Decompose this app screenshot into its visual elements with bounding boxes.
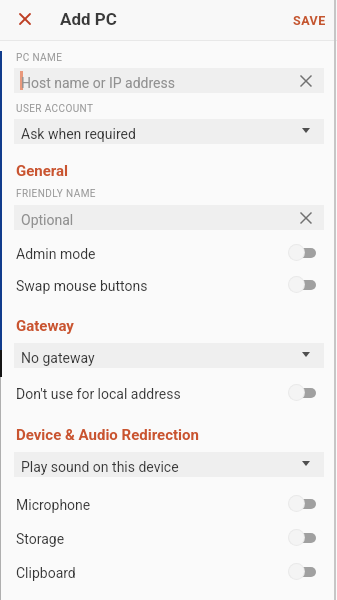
staticText: FRIENDLY NAME bbox=[16, 188, 96, 200]
staticText: Host name or IP address bbox=[21, 75, 175, 91]
button[interactable]: Swap mouse buttons bbox=[0, 269, 337, 301]
staticText: Clipboard bbox=[16, 565, 76, 581]
staticText: Microphone bbox=[16, 497, 91, 513]
button[interactable]: Clear bbox=[294, 69, 318, 93]
staticText: PC NAME bbox=[16, 52, 63, 64]
staticText: Gateway bbox=[16, 317, 74, 335]
staticText: Ask when required bbox=[21, 126, 136, 142]
button[interactable]: No gateway bbox=[14, 343, 324, 368]
button[interactable]: SAVE bbox=[284, 4, 335, 37]
staticText: Device & Audio Redirection bbox=[16, 426, 199, 444]
staticText: Storage bbox=[16, 531, 65, 547]
button[interactable]: Microphone bbox=[0, 488, 337, 520]
button[interactable]: Optional bbox=[14, 205, 324, 230]
button[interactable]: Storage bbox=[0, 522, 337, 554]
button[interactable]: Don't use for local address bbox=[0, 377, 337, 409]
staticText: Don't use for local address bbox=[16, 386, 181, 402]
staticText: Add PC bbox=[60, 9, 117, 29]
button[interactable]: Ask when required bbox=[14, 119, 324, 144]
staticText: Play sound on this device bbox=[21, 459, 179, 475]
staticText: USER ACCOUNT bbox=[16, 103, 94, 115]
staticText: General bbox=[16, 162, 69, 180]
button[interactable]: Admin mode bbox=[0, 237, 337, 269]
staticText: Optional bbox=[21, 212, 74, 228]
button[interactable]: Clear bbox=[294, 206, 318, 230]
button[interactable]: Play sound on this device bbox=[14, 452, 324, 477]
staticText: Swap mouse buttons bbox=[16, 278, 148, 294]
button[interactable]: Host name or IP address bbox=[14, 68, 324, 93]
staticText: SAVE bbox=[293, 13, 326, 28]
staticText: Admin mode bbox=[16, 246, 96, 262]
button[interactable]: Close bbox=[13, 7, 37, 31]
staticText: No gateway bbox=[21, 350, 95, 366]
button[interactable]: Clipboard bbox=[0, 556, 337, 588]
